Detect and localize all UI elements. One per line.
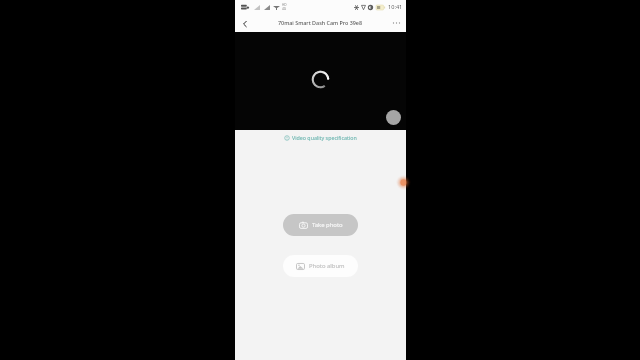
- button[interactable]: More options: [386, 13, 406, 32]
- staticText: HD: [282, 3, 287, 7]
- staticText: Take photo: [312, 221, 343, 229]
- staticText: Photo album: [309, 262, 345, 270]
- staticText: Video quality specification: [292, 134, 357, 141]
- staticText: 70mai Smart Dash Cam Pro 39e8: [278, 19, 363, 26]
- button[interactable]: Take photo: [283, 214, 358, 236]
- staticText: 10:41: [388, 3, 403, 11]
- button[interactable]: Back: [235, 13, 255, 32]
- button[interactable]: Video quality specification: [282, 133, 359, 142]
- button[interactable]: Assistant: [396, 175, 411, 190]
- button[interactable]: Photo album: [283, 255, 358, 277]
- button[interactable]: Shutter: [386, 110, 401, 125]
- staticText: 4G: [282, 7, 287, 11]
